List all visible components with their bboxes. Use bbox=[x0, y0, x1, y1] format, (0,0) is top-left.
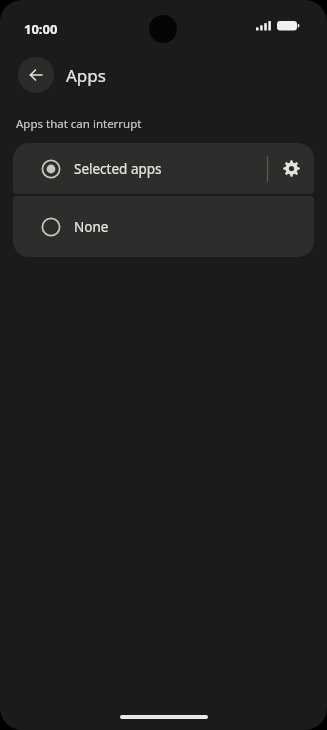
staticText: Apps that can interrupt bbox=[16, 116, 142, 132]
staticText: Apps bbox=[66, 64, 106, 87]
staticText: Selected apps bbox=[74, 160, 162, 178]
button[interactable]: Settings for selected apps bbox=[268, 143, 314, 194]
button[interactable]: Back bbox=[18, 57, 54, 93]
staticText: None bbox=[74, 218, 109, 236]
button[interactable]: Selected apps bbox=[13, 143, 314, 194]
staticText: 10:00 bbox=[24, 20, 58, 38]
button[interactable]: None bbox=[13, 196, 314, 257]
